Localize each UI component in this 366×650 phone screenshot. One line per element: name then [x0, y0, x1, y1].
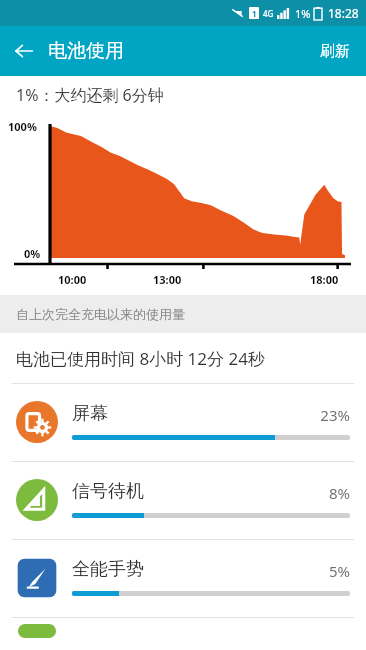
staticText: 1% [295, 6, 311, 21]
staticText: 100% [8, 119, 37, 134]
button[interactable]: 屏幕 [0, 384, 366, 462]
button[interactable]: 电池已使用时间 8小时 12分 24秒 [0, 333, 366, 384]
staticText: 18:28 [328, 5, 359, 21]
staticText: 4G [263, 8, 274, 19]
staticText: 刷新 [320, 42, 350, 61]
staticText: 5% [328, 561, 350, 581]
staticText: 全能手势 [72, 558, 144, 581]
button[interactable]: 刷新 [304, 28, 366, 75]
staticText: 电池使用 [48, 39, 124, 63]
staticText: 自上次完全充电以来的使用量 [16, 306, 185, 322]
staticText: 8% [328, 483, 350, 503]
staticText: 18:00 [310, 272, 339, 287]
button[interactable]: Back [0, 27, 48, 75]
staticText: 23% [320, 405, 350, 425]
staticText: 1 [252, 8, 257, 19]
staticText: 10:00 [58, 272, 87, 287]
staticText: 屏幕 [72, 402, 108, 425]
staticText: 0% [24, 246, 41, 261]
staticText: 1%：大约还剩 6分钟 [16, 84, 164, 106]
staticText: 信号待机 [72, 480, 144, 503]
staticText: 电池已使用时间 8小时 12分 24秒 [16, 347, 265, 370]
button[interactable]: 信号待机 [0, 462, 366, 540]
staticText: 13:00 [153, 272, 182, 287]
button[interactable]: 全能手势 [0, 540, 366, 618]
